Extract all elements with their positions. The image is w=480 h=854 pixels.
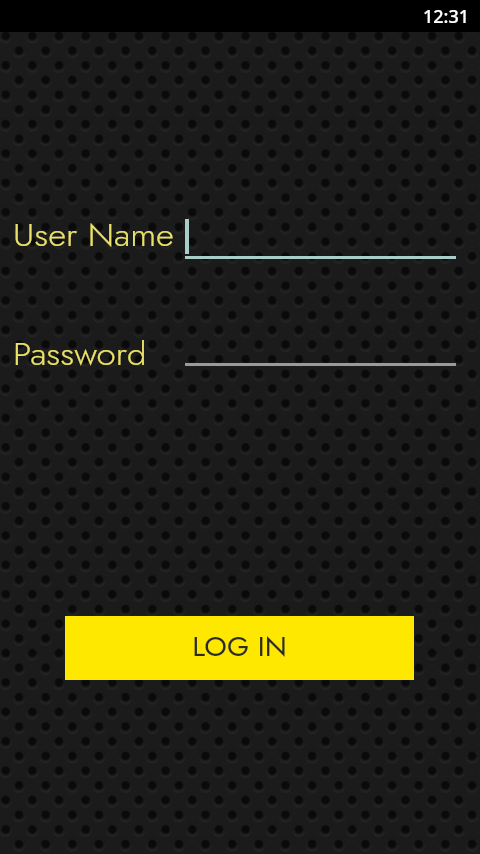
button[interactable]: LOG IN xyxy=(65,616,414,680)
staticText: Password xyxy=(13,331,147,375)
button[interactable]: User Name xyxy=(0,210,480,266)
staticText: User Name xyxy=(13,212,174,258)
button[interactable]: Password xyxy=(0,329,480,373)
staticText: 12:31 xyxy=(423,4,470,29)
staticText: LOG IN xyxy=(192,627,288,666)
